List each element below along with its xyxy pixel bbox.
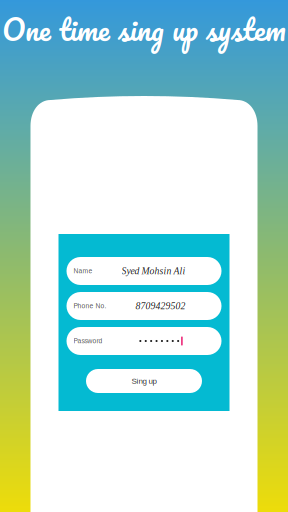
staticText: Name xyxy=(73,267,92,275)
button[interactable]: Sing up xyxy=(86,369,202,393)
staticText: One time sing up system xyxy=(2,4,286,54)
button[interactable]: Phone No. xyxy=(66,292,221,320)
button[interactable]: Name xyxy=(66,257,221,285)
staticText: Phone No. xyxy=(73,302,106,310)
staticText: Sing up xyxy=(131,376,156,385)
staticText: Syed Mohsin Ali xyxy=(121,266,185,276)
button[interactable]: Password xyxy=(66,327,221,355)
staticText: Password xyxy=(73,337,102,345)
staticText: 8709429502 xyxy=(135,301,185,311)
